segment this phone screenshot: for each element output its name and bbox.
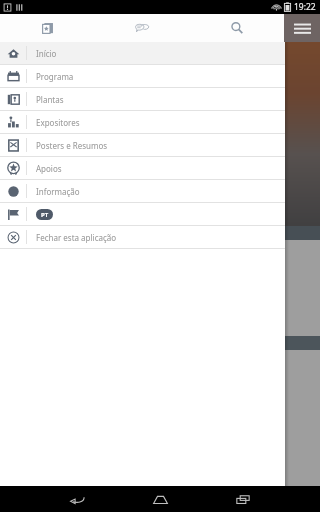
button[interactable]: Recents	[223, 486, 263, 512]
button[interactable]: Menu	[284, 14, 320, 42]
staticText: Expositores	[36, 117, 80, 128]
button[interactable]: Programa	[0, 65, 285, 87]
button[interactable]: PT	[0, 203, 285, 225]
button[interactable]: Plantas	[0, 88, 285, 110]
staticText: EM DESTAQUE	[6, 229, 48, 237]
staticText: Informação	[36, 186, 80, 197]
staticText: PT	[41, 211, 49, 219]
button[interactable]: Pesquisar	[189, 14, 284, 42]
staticText: Posters e Resumos	[36, 140, 108, 151]
button[interactable]: Apoios	[0, 157, 285, 179]
button[interactable]: Mensagens	[94, 14, 189, 42]
staticText: Programa	[36, 71, 74, 82]
button[interactable]: Expositores	[0, 111, 285, 133]
button[interactable]: Favoritos	[0, 14, 94, 42]
staticText: Fechar esta aplicação	[36, 232, 117, 243]
button[interactable]: Fechar esta aplicação	[0, 226, 285, 248]
button[interactable]: Back	[57, 486, 97, 512]
button[interactable]: Posters e Resumos	[0, 134, 285, 156]
button[interactable]: Início	[0, 42, 285, 64]
button[interactable]: Informação	[0, 180, 285, 202]
staticText: Plantas	[36, 94, 64, 105]
staticText: Início	[36, 48, 57, 59]
staticText: Apoios	[36, 163, 62, 174]
button[interactable]: Home	[140, 486, 180, 512]
staticText: 19:22	[294, 1, 316, 13]
